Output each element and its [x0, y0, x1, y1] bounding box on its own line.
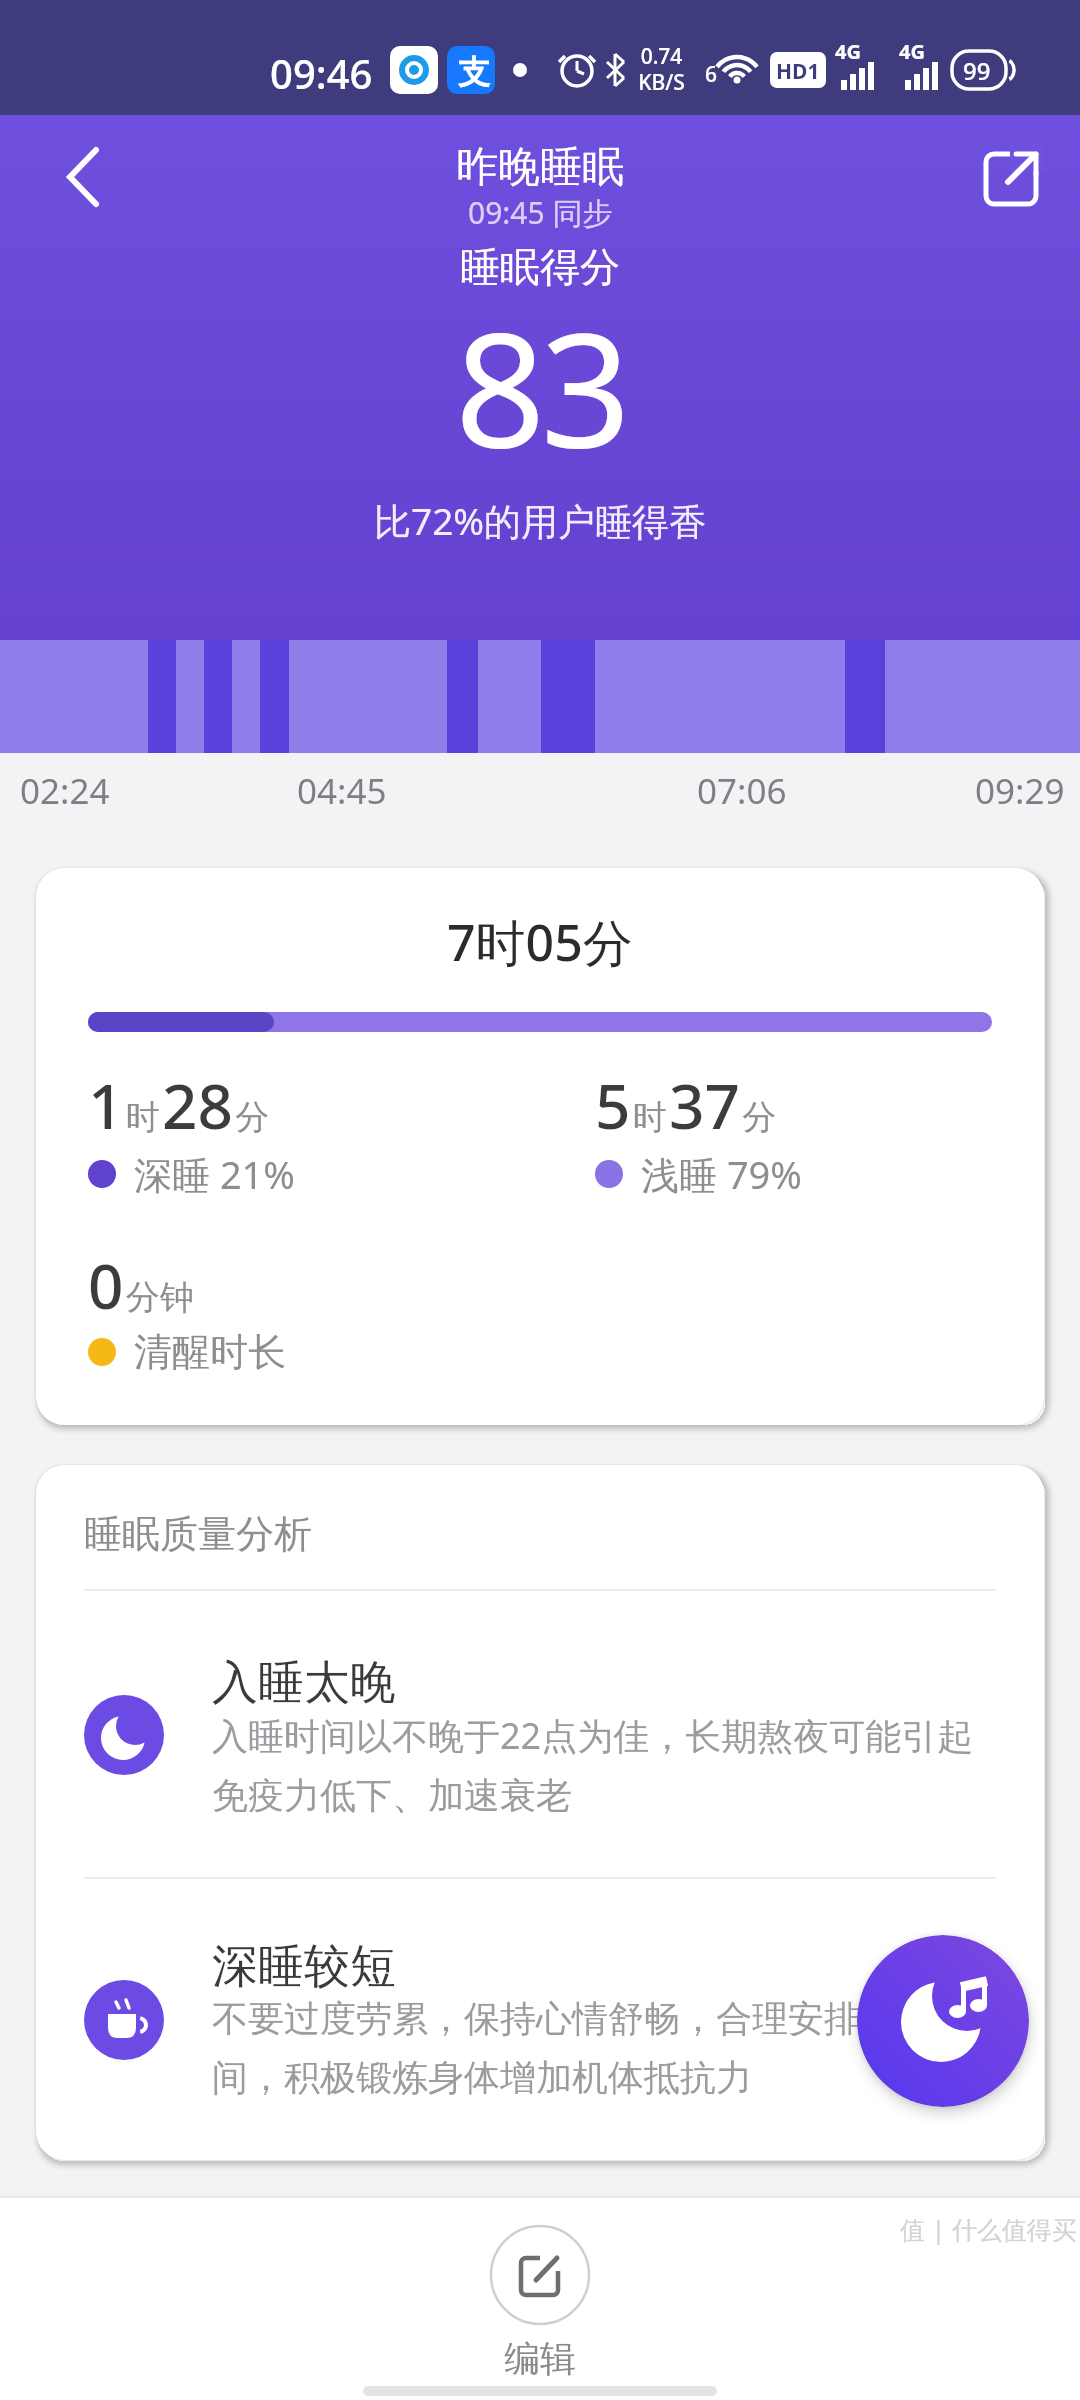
button[interactable] [440, 2225, 640, 2385]
staticText: 1 时 28 分 [88, 1063, 270, 1147]
button[interactable]: 深睡较短 [36, 1920, 1044, 2160]
staticText: 5 时 37 分 [595, 1063, 777, 1147]
staticText: 不要过度劳累，保持心情舒畅，合理安排时 间，积极锻炼身体增加机体抵抗力 [212, 1996, 896, 2101]
button[interactable]: 入睡太晚 [36, 1635, 1044, 1875]
staticText: 编辑 [504, 2336, 576, 2381]
staticText: 04:45 [297, 767, 387, 815]
button[interactable] [40, 130, 130, 220]
staticText: 睡眠得分 [460, 242, 620, 292]
staticText: 4G [835, 38, 861, 65]
staticText: 深睡 21% [134, 1148, 295, 1200]
staticText: 99 [963, 54, 991, 87]
staticText: 4G [899, 38, 925, 65]
staticText: 入睡太晚 [212, 1654, 396, 1712]
staticText: 09:45 同步 [468, 192, 613, 233]
staticText: 6 [705, 60, 718, 89]
staticText: 入睡时间以不晚于22点为佳，长期熬夜可能引起 免疫力低下、加速衰老 [212, 1711, 974, 1819]
staticText: 浅睡 79% [641, 1148, 802, 1200]
staticText: 比72%的用户睡得香 [374, 495, 707, 546]
staticText: HD1 [776, 57, 820, 86]
staticText: 7时05分 [447, 908, 633, 976]
staticText: 昨晚睡眠 [456, 141, 624, 194]
button[interactable]: 7时05分 [36, 868, 1044, 1425]
staticText: 深睡较短 [212, 1938, 396, 1996]
button[interactable] [857, 1935, 1029, 2107]
staticText: 07:06 [697, 767, 787, 815]
staticText: 清醒时长 [134, 1328, 286, 1376]
staticText: 83 [455, 278, 626, 493]
staticText: 值 | 什么值得买 [900, 2212, 1077, 2246]
staticText: 02:24 [20, 767, 110, 815]
staticText: 09:46 [270, 46, 373, 100]
staticText: 09:29 [975, 767, 1065, 815]
staticText: 支 [458, 52, 490, 92]
staticText: 0 分钟 [88, 1243, 194, 1327]
button[interactable] [972, 138, 1052, 218]
staticText: 睡眠质量分析 [84, 1510, 312, 1558]
staticText: 0.74 KB/S [638, 42, 685, 97]
